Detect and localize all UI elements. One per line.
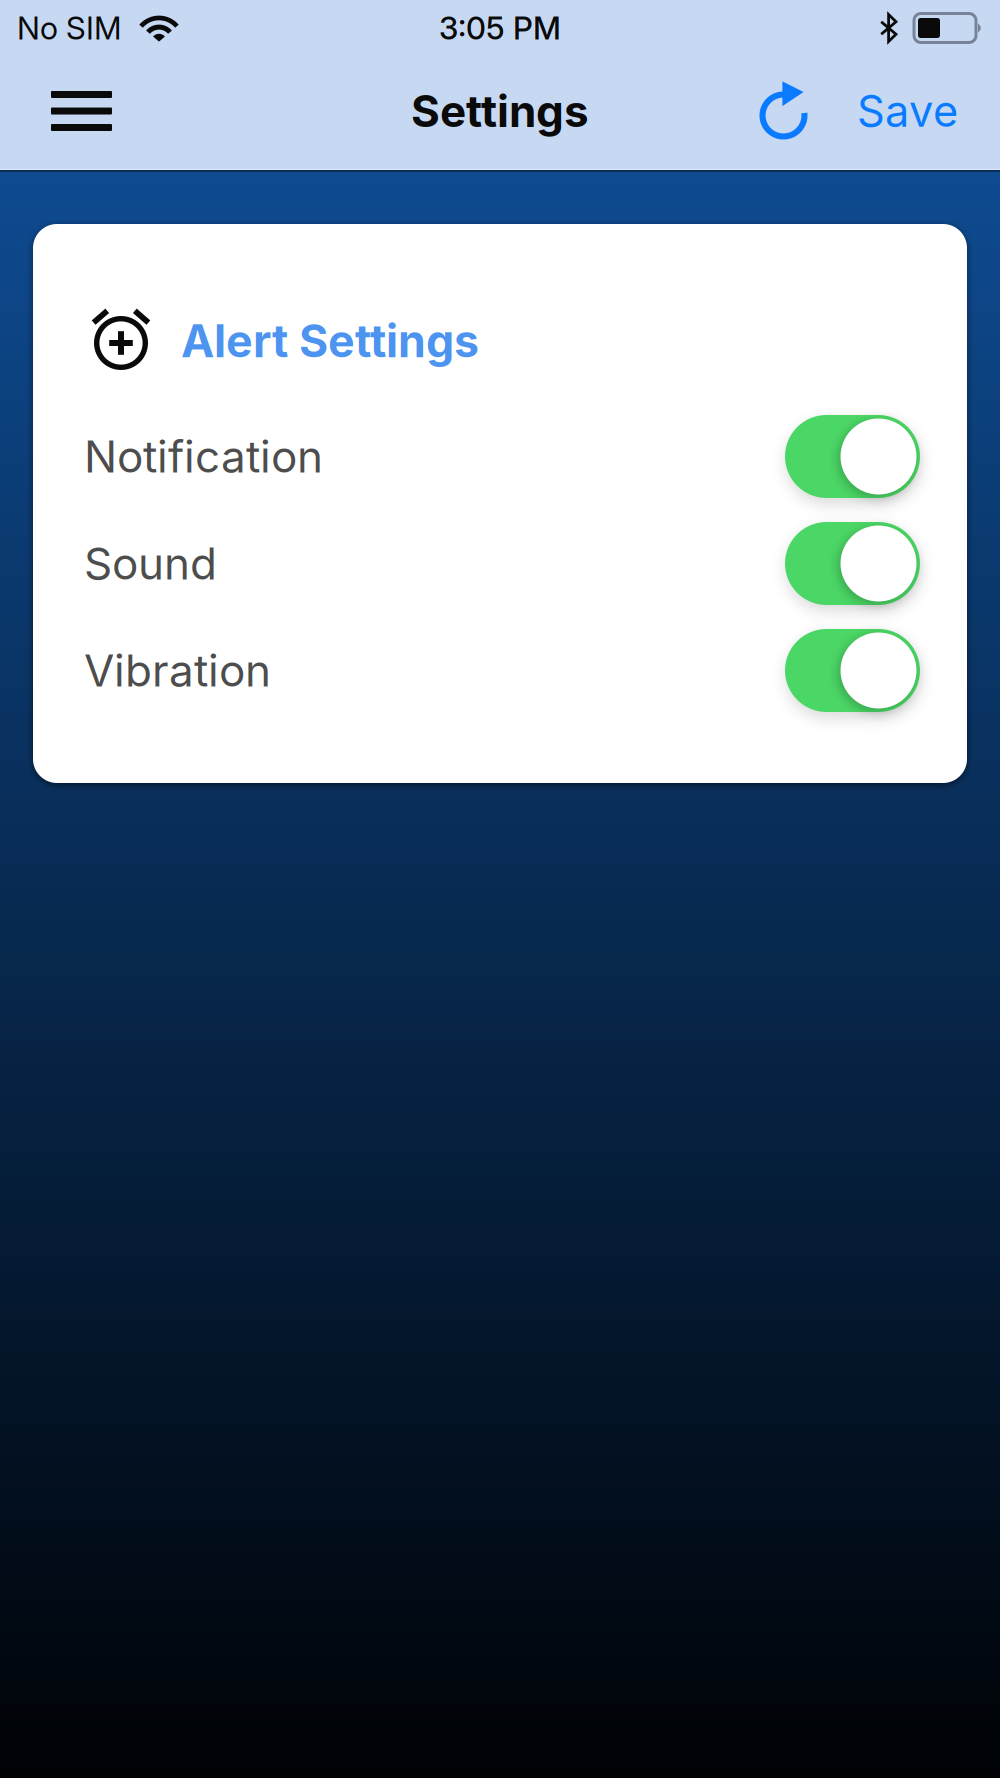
staticText: No SIM [17, 9, 122, 47]
button[interactable]: Save [847, 71, 968, 151]
button[interactable]: Menu [31, 73, 132, 149]
button[interactable]: Notification [33, 403, 967, 510]
staticText: Notification [84, 430, 323, 483]
staticText: Alert Settings [181, 314, 479, 368]
button[interactable]: Refresh [745, 64, 823, 158]
staticText: Sound [84, 537, 217, 590]
staticText: Settings [411, 84, 589, 138]
button[interactable]: Vibration [33, 617, 967, 724]
staticText: Vibration [84, 644, 271, 697]
button[interactable]: Sound [33, 510, 967, 617]
staticText: 3:05 PM [439, 9, 561, 47]
staticText: Save [857, 85, 958, 137]
